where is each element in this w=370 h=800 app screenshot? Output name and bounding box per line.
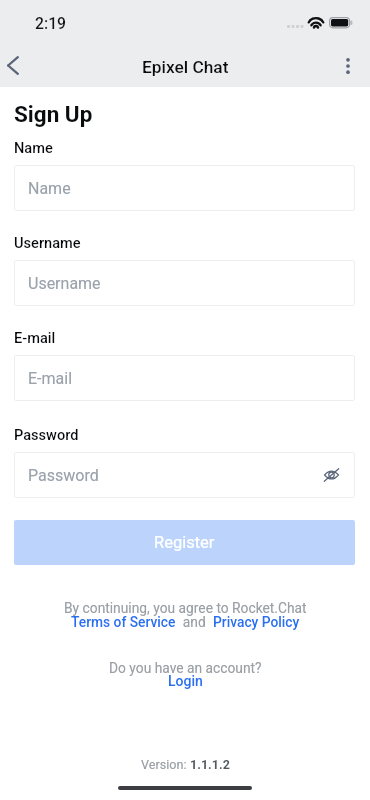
- button[interactable]: Back: [0, 43, 35, 87]
- staticText: Username: [28, 274, 101, 293]
- staticText: E-mail: [28, 369, 73, 388]
- button[interactable]: Terms of Service: [71, 614, 176, 630]
- staticText: Name: [28, 179, 71, 198]
- staticText: Sign Up: [14, 101, 93, 127]
- staticText: 1.1.1.2: [190, 757, 230, 772]
- staticText: Username: [14, 234, 81, 251]
- staticText: and: [176, 614, 213, 630]
- staticText: Do you have an account?: [109, 660, 262, 676]
- staticText: 2:19: [35, 14, 67, 33]
- staticText: Register: [154, 533, 215, 552]
- staticText: E-mail: [14, 329, 56, 346]
- button[interactable]: Login: [168, 673, 203, 689]
- staticText: By continuing, you agree to Rocket.Chat: [64, 600, 307, 616]
- staticText: Epixel Chat: [142, 57, 229, 77]
- staticText: Version:: [141, 757, 190, 772]
- button[interactable]: More options: [326, 44, 370, 88]
- button[interactable]: Register: [14, 520, 355, 565]
- staticText: Password: [14, 426, 79, 443]
- button[interactable]: Privacy Policy: [213, 614, 300, 630]
- button[interactable]: Password: [14, 452, 355, 498]
- button[interactable]: E-mail: [14, 355, 355, 401]
- staticText: Password: [28, 466, 99, 485]
- button[interactable]: Name: [14, 165, 355, 211]
- button[interactable]: Show password: [324, 469, 339, 481]
- staticText: Name: [14, 139, 53, 156]
- button[interactable]: Username: [14, 260, 355, 306]
